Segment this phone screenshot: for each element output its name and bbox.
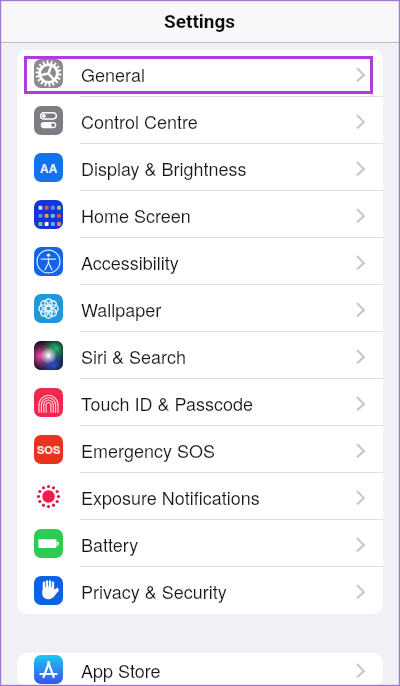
staticText: Wallpaper (81, 296, 162, 322)
staticText: Exposure Notifications (81, 484, 260, 510)
staticText: Emergency SOS (81, 437, 215, 463)
button[interactable]: Touch ID & Passcode (17, 379, 383, 426)
button[interactable]: Exposure Notifications (17, 473, 383, 520)
button[interactable]: Privacy & Security (17, 567, 383, 614)
staticText: Accessibility (81, 249, 179, 275)
staticText: App Store (81, 657, 161, 683)
staticText: Home Screen (81, 202, 191, 228)
staticText: Control Centre (81, 108, 198, 134)
button[interactable]: Battery (17, 520, 383, 567)
staticText: AA (40, 159, 58, 176)
button[interactable]: Home Screen (17, 191, 383, 238)
staticText: Display & Brightness (81, 155, 247, 181)
staticText: Settings (164, 10, 236, 32)
button[interactable]: SOS (17, 426, 383, 473)
button[interactable]: Control Centre (17, 97, 383, 144)
button[interactable]: Siri & Search (17, 332, 383, 379)
staticText: General (81, 61, 145, 87)
button[interactable]: General (17, 50, 383, 97)
staticText: Siri & Search (81, 343, 186, 369)
staticText: Battery (81, 531, 139, 557)
button[interactable]: Wallpaper (17, 285, 383, 332)
button[interactable]: Accessibility (17, 238, 383, 285)
staticText: Touch ID & Passcode (81, 390, 253, 416)
staticText: SOS (37, 442, 61, 458)
staticText: Privacy & Security (81, 578, 227, 604)
button[interactable]: App Store (17, 653, 383, 686)
button[interactable]: AA (17, 144, 383, 191)
